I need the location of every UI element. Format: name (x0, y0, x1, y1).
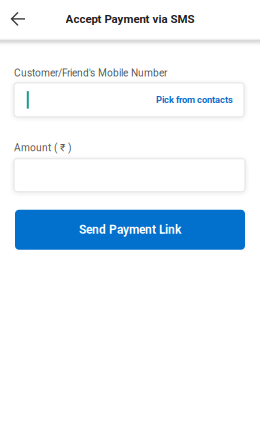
staticText: Accept Payment via SMS (65, 12, 194, 26)
button[interactable]: Send Payment Link (15, 210, 245, 250)
button[interactable]: Back (0, 0, 37, 38)
button[interactable]: Pick from contacts (156, 85, 244, 114)
staticText: Send Payment Link (79, 223, 181, 237)
button[interactable]: Mobile number (14, 83, 156, 117)
staticText: Amount ( ₹ ) (14, 142, 72, 154)
staticText: Pick from contacts (156, 94, 233, 105)
button[interactable]: Amount in rupees (14, 159, 245, 192)
staticText: Customer/Friend's Mobile Number (14, 67, 167, 79)
